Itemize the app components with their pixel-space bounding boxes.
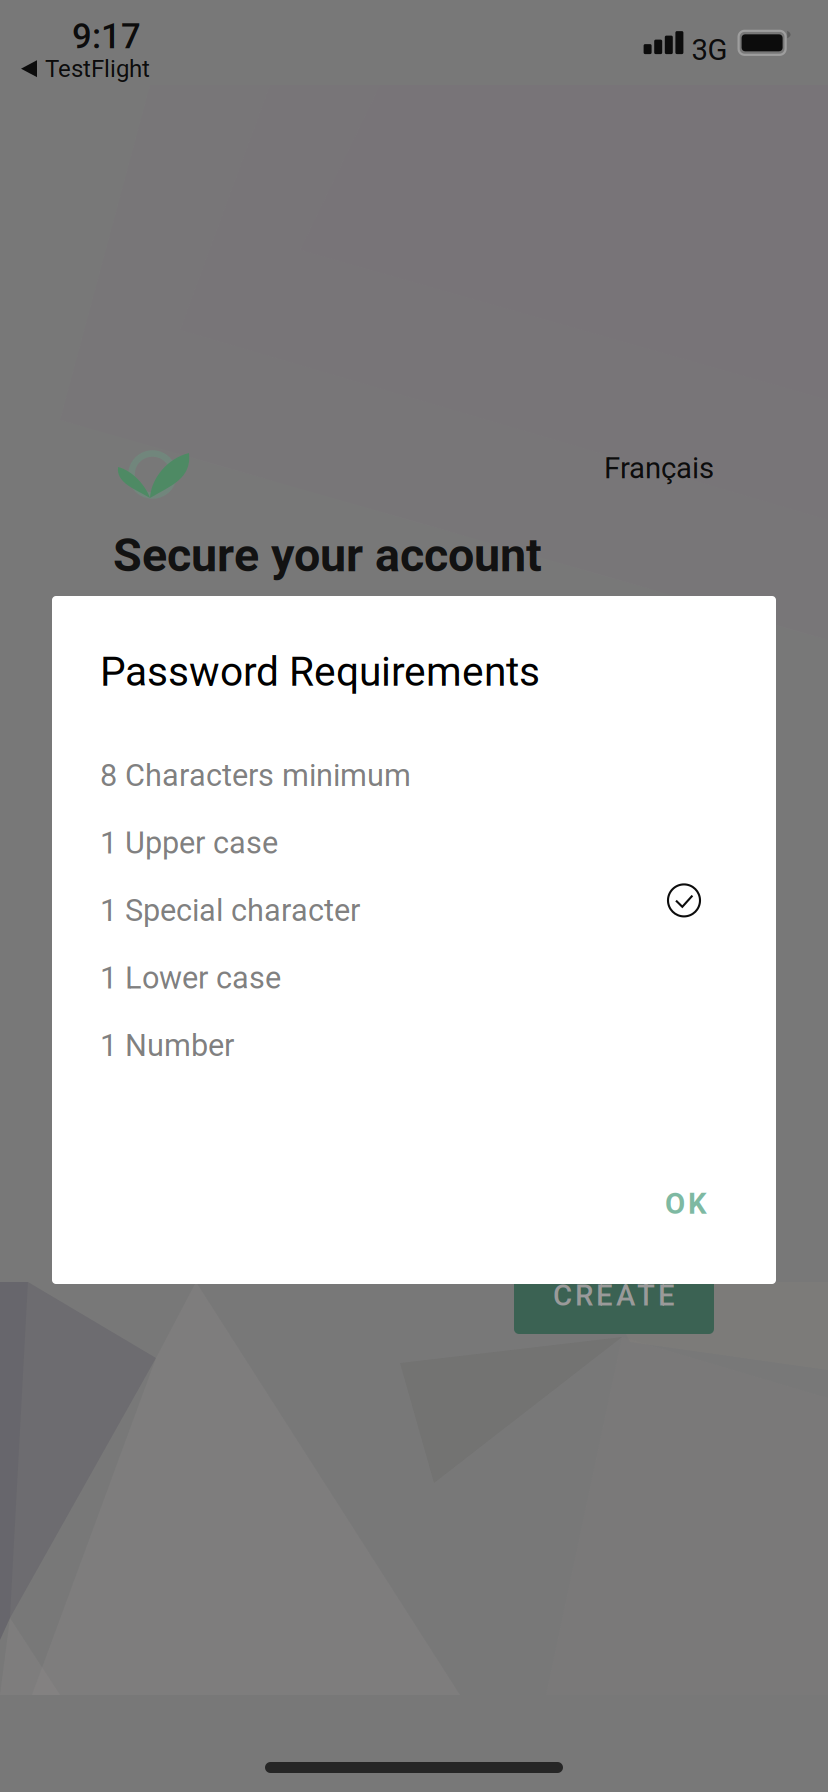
staticText: Secure your account — [113, 528, 542, 583]
staticText: CREATE — [553, 1278, 675, 1313]
staticText: Password Requirements — [100, 648, 540, 696]
staticText: 1 Lower case — [100, 960, 281, 996]
staticText: 1 Number — [100, 1027, 234, 1063]
staticText: 9:17 — [72, 16, 141, 57]
staticText: 1 Upper case — [100, 825, 278, 861]
button[interactable]: Français — [596, 444, 722, 492]
button[interactable]: CREATE — [514, 1257, 714, 1334]
staticText: TestFlight — [45, 55, 150, 83]
staticText: 3G — [691, 33, 727, 67]
staticText: 1 Special character — [100, 892, 360, 928]
button[interactable]: OK — [645, 1173, 727, 1235]
staticText: Français — [604, 451, 714, 485]
staticText: 8 Characters minimum — [100, 757, 411, 793]
staticText: OK — [665, 1187, 707, 1221]
